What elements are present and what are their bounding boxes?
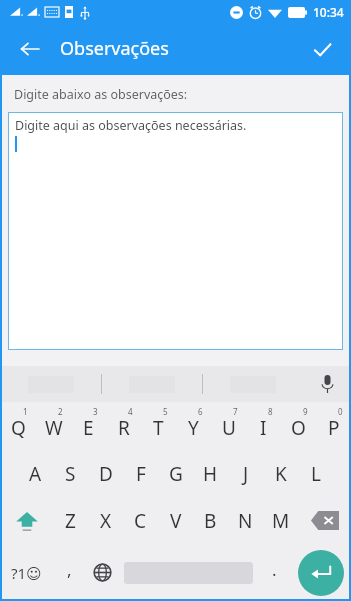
- staticText: Q: [11, 415, 26, 441]
- button[interactable]: Digite aqui as observações necessárias.: [8, 112, 343, 350]
- button[interactable]: Voice input: [303, 366, 351, 402]
- button[interactable]: [0, 366, 101, 402]
- button[interactable]: S: [53, 450, 88, 497]
- staticText: L: [311, 461, 321, 487]
- staticText: N: [238, 508, 253, 534]
- staticText: 2: [58, 406, 63, 417]
- staticText: ?1☺: [11, 563, 42, 583]
- button[interactable]: Save: [301, 28, 343, 70]
- staticText: E: [83, 415, 94, 441]
- staticText: C: [134, 508, 147, 534]
- staticText: 3: [93, 406, 98, 417]
- button[interactable]: A: [18, 450, 53, 497]
- staticText: G: [169, 461, 183, 487]
- staticText: K: [275, 461, 287, 487]
- staticText: Digite abaixo as observações:: [14, 86, 188, 103]
- button[interactable]: V: [158, 497, 193, 544]
- button[interactable]: X: [88, 497, 123, 544]
- staticText: F: [136, 461, 146, 487]
- button[interactable]: 9: [281, 402, 316, 450]
- button[interactable]: 0: [316, 402, 351, 450]
- button[interactable]: H: [193, 450, 228, 497]
- button[interactable]: L: [298, 450, 333, 497]
- button[interactable]: Backspace: [298, 497, 351, 544]
- staticText: X: [100, 508, 112, 534]
- staticText: Digite aqui as observações necessárias.: [15, 117, 247, 134]
- staticText: 4: [128, 406, 133, 417]
- button[interactable]: Shift: [0, 497, 53, 544]
- staticText: 6: [198, 406, 203, 417]
- button[interactable]: 1: [0, 402, 36, 450]
- staticText: 5: [163, 406, 168, 417]
- button[interactable]: 5: [141, 402, 176, 450]
- staticText: 10:34: [313, 4, 344, 20]
- staticText: Y: [188, 415, 199, 441]
- button[interactable]: C: [123, 497, 158, 544]
- button[interactable]: Back: [9, 28, 51, 70]
- staticText: B: [204, 508, 217, 534]
- button[interactable]: 2: [36, 402, 71, 450]
- button[interactable]: Space: [119, 544, 258, 601]
- staticText: H: [203, 461, 218, 487]
- staticText: ,: [67, 558, 72, 581]
- staticText: S: [65, 461, 76, 487]
- staticText: J: [243, 461, 249, 487]
- button[interactable]: N: [228, 497, 263, 544]
- staticText: U: [222, 415, 236, 441]
- staticText: 7: [233, 406, 238, 417]
- button[interactable]: B: [193, 497, 228, 544]
- staticText: M: [272, 508, 290, 534]
- staticText: T: [153, 415, 164, 441]
- button[interactable]: 8: [246, 402, 281, 450]
- button[interactable]: J: [228, 450, 263, 497]
- button[interactable]: .: [258, 544, 291, 601]
- staticText: .: [272, 558, 277, 581]
- button[interactable]: 6: [176, 402, 211, 450]
- button[interactable]: F: [123, 450, 158, 497]
- button[interactable]: K: [263, 450, 298, 497]
- staticText: A: [29, 461, 42, 487]
- button[interactable]: Enter: [291, 544, 351, 601]
- staticText: W: [45, 415, 63, 441]
- staticText: Z: [65, 508, 76, 534]
- staticText: D: [99, 461, 113, 487]
- button[interactable]: D: [88, 450, 123, 497]
- button[interactable]: Z: [53, 497, 88, 544]
- button[interactable]: [202, 366, 303, 402]
- staticText: P: [328, 415, 340, 441]
- staticText: V: [170, 508, 182, 534]
- button[interactable]: 7: [211, 402, 246, 450]
- button[interactable]: ,: [53, 544, 86, 601]
- button[interactable]: 3: [71, 402, 106, 450]
- staticText: I: [260, 415, 267, 441]
- staticText: O: [291, 415, 306, 441]
- button[interactable]: [101, 366, 202, 402]
- button[interactable]: 4: [106, 402, 141, 450]
- staticText: 1: [23, 406, 28, 417]
- button[interactable]: M: [263, 497, 298, 544]
- staticText: 8: [268, 406, 273, 417]
- staticText: 9: [303, 406, 308, 417]
- button[interactable]: ?1☺: [0, 544, 53, 601]
- button[interactable]: G: [158, 450, 193, 497]
- staticText: Observações: [60, 36, 169, 61]
- button[interactable]: Change language: [86, 544, 119, 601]
- staticText: R: [118, 415, 130, 441]
- staticText: 0: [338, 406, 343, 417]
